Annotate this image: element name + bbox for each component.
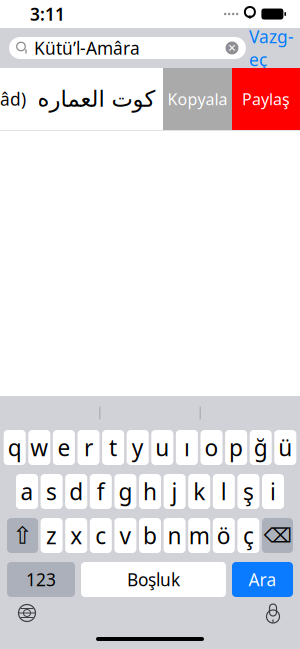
button[interactable]: n <box>164 518 186 553</box>
button[interactable]: o <box>200 430 222 465</box>
staticText: y <box>132 432 144 462</box>
staticText: Kopyala <box>167 88 227 110</box>
button[interactable]: Ara <box>232 562 293 597</box>
staticText: n <box>168 520 182 550</box>
button[interactable]: Kopyala <box>163 68 232 130</box>
staticText: e <box>57 432 70 462</box>
staticText: Boşluk <box>127 568 180 591</box>
staticText: c <box>95 520 106 550</box>
button[interactable]: Boşluk <box>81 562 226 597</box>
button[interactable]: ç <box>237 518 259 553</box>
button[interactable]: l <box>213 474 235 509</box>
button[interactable]: ı <box>176 430 198 465</box>
button[interactable]: Shift <box>7 518 38 553</box>
staticText: v <box>119 520 131 550</box>
button[interactable]: r <box>77 430 99 465</box>
button[interactable]: k <box>188 474 210 509</box>
button[interactable]: v <box>114 518 136 553</box>
staticText: t <box>109 432 117 462</box>
staticText: l <box>221 476 227 506</box>
staticText: ğ <box>254 432 268 462</box>
staticText: Vazgeç <box>249 25 294 71</box>
button[interactable]: x <box>65 518 87 553</box>
button[interactable]: d <box>65 474 87 509</box>
button[interactable]: z <box>41 518 63 553</box>
staticText: g <box>118 476 132 506</box>
button[interactable]: Paylaş <box>232 68 300 130</box>
button[interactable]: ğ <box>250 430 272 465</box>
button[interactable]: 123 <box>7 562 75 597</box>
staticText: Kütü’l-Amâra <box>34 36 140 59</box>
staticText: i <box>270 476 276 506</box>
staticText: ş <box>243 476 254 506</box>
button[interactable]: f <box>90 474 112 509</box>
staticText: ⌫ <box>263 524 291 547</box>
staticText: k <box>193 476 205 506</box>
staticText: كوت العماره <box>37 86 155 112</box>
button[interactable]: g <box>114 474 136 509</box>
staticText: 3:11 <box>30 2 65 25</box>
staticText: 123 <box>26 568 56 591</box>
staticText: ç <box>243 520 254 550</box>
staticText: o <box>204 432 218 462</box>
button[interactable]: c <box>90 518 112 553</box>
staticText: q <box>8 432 22 462</box>
button[interactable]: u <box>151 430 173 465</box>
staticText: ı <box>184 432 190 462</box>
button[interactable]: j <box>164 474 186 509</box>
staticText: r <box>84 432 93 462</box>
staticText: m <box>189 520 210 550</box>
staticText: j <box>172 476 178 506</box>
button[interactable]: Clear text <box>218 37 246 59</box>
staticText: d <box>69 476 83 506</box>
button[interactable]: Delete <box>262 518 293 553</box>
staticText: x <box>70 520 82 550</box>
button[interactable]: h <box>139 474 161 509</box>
button[interactable]: Vazgeç <box>246 35 297 61</box>
button[interactable]: ö <box>213 518 235 553</box>
button[interactable]: Dictate <box>256 598 290 628</box>
staticText: h <box>143 476 157 506</box>
staticText: b <box>143 520 157 550</box>
button[interactable]: e <box>53 430 75 465</box>
button[interactable]: p <box>225 430 247 465</box>
button[interactable]: ş <box>237 474 259 509</box>
button[interactable]: a <box>16 474 38 509</box>
staticText: p <box>229 432 243 462</box>
staticText: ✕ <box>227 42 236 54</box>
staticText: s <box>46 476 57 506</box>
staticText: ü <box>278 432 292 462</box>
staticText: Ara <box>248 568 276 591</box>
button[interactable]: s <box>41 474 63 509</box>
staticText: z <box>46 520 57 550</box>
button[interactable]: w <box>28 430 50 465</box>
button[interactable]: b <box>139 518 161 553</box>
staticText: ⇧ <box>12 522 32 549</box>
button[interactable]: m <box>188 518 210 553</box>
button[interactable]: q <box>4 430 26 465</box>
staticText: Paylaş <box>242 88 290 110</box>
button[interactable]: y <box>127 430 149 465</box>
staticText: w <box>30 432 48 462</box>
button[interactable]: Next keyboard <box>10 598 44 628</box>
staticText: ö <box>217 520 231 550</box>
staticText: f <box>97 476 105 506</box>
staticText: u <box>155 432 169 462</box>
button[interactable]: t <box>102 430 124 465</box>
button[interactable]: ü <box>274 430 296 465</box>
staticText: âd) <box>0 87 26 110</box>
staticText: a <box>20 476 33 506</box>
button[interactable]: i <box>262 474 284 509</box>
